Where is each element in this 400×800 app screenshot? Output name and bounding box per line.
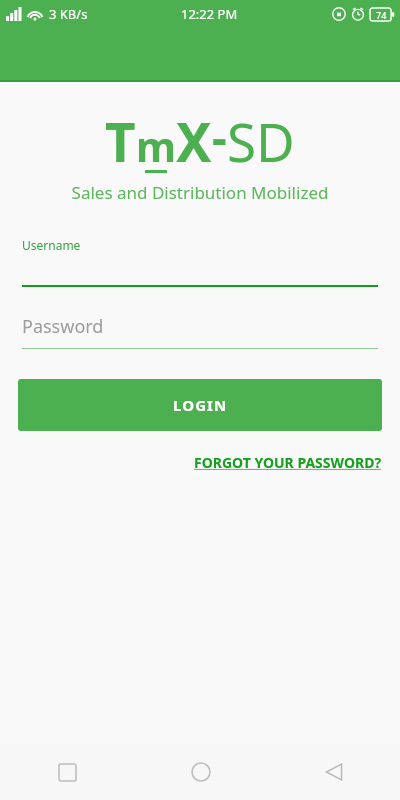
- staticText: 12:22 PM: [181, 5, 238, 23]
- button[interactable]: Home: [134, 744, 267, 800]
- staticText: 74: [376, 9, 387, 21]
- staticText: 3 KB/s: [49, 5, 88, 23]
- staticText: Sales and Distribution Mobilized: [0, 181, 400, 204]
- staticText: FORGOT YOUR PASSWORD?: [194, 453, 382, 472]
- staticText: LOGIN: [173, 395, 228, 415]
- staticText: Password: [22, 314, 104, 339]
- staticText: X: [176, 105, 212, 177]
- button[interactable]: Recent apps: [0, 744, 134, 800]
- button[interactable]: Username: [0, 237, 400, 287]
- staticText: T: [105, 105, 136, 177]
- staticText: SD: [227, 105, 295, 177]
- button[interactable]: LOGIN: [18, 379, 382, 431]
- staticText: m: [136, 118, 176, 174]
- staticText: Username: [22, 237, 81, 253]
- staticText: -: [212, 106, 227, 169]
- button[interactable]: FORGOT YOUR PASSWORD?: [186, 451, 400, 474]
- button[interactable]: Password: [0, 314, 400, 349]
- button[interactable]: Back: [267, 744, 400, 800]
